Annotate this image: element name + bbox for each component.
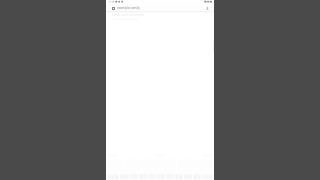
- button[interactable]: Account: [206, 7, 209, 10]
- button[interactable]: Page info: [106, 5, 214, 11]
- other: Page info: [112, 7, 115, 10]
- staticText: Search results for example: [112, 13, 145, 17]
- staticText: example.com/q: [117, 6, 140, 10]
- staticText: About 1,240,000 results: [112, 17, 139, 20]
